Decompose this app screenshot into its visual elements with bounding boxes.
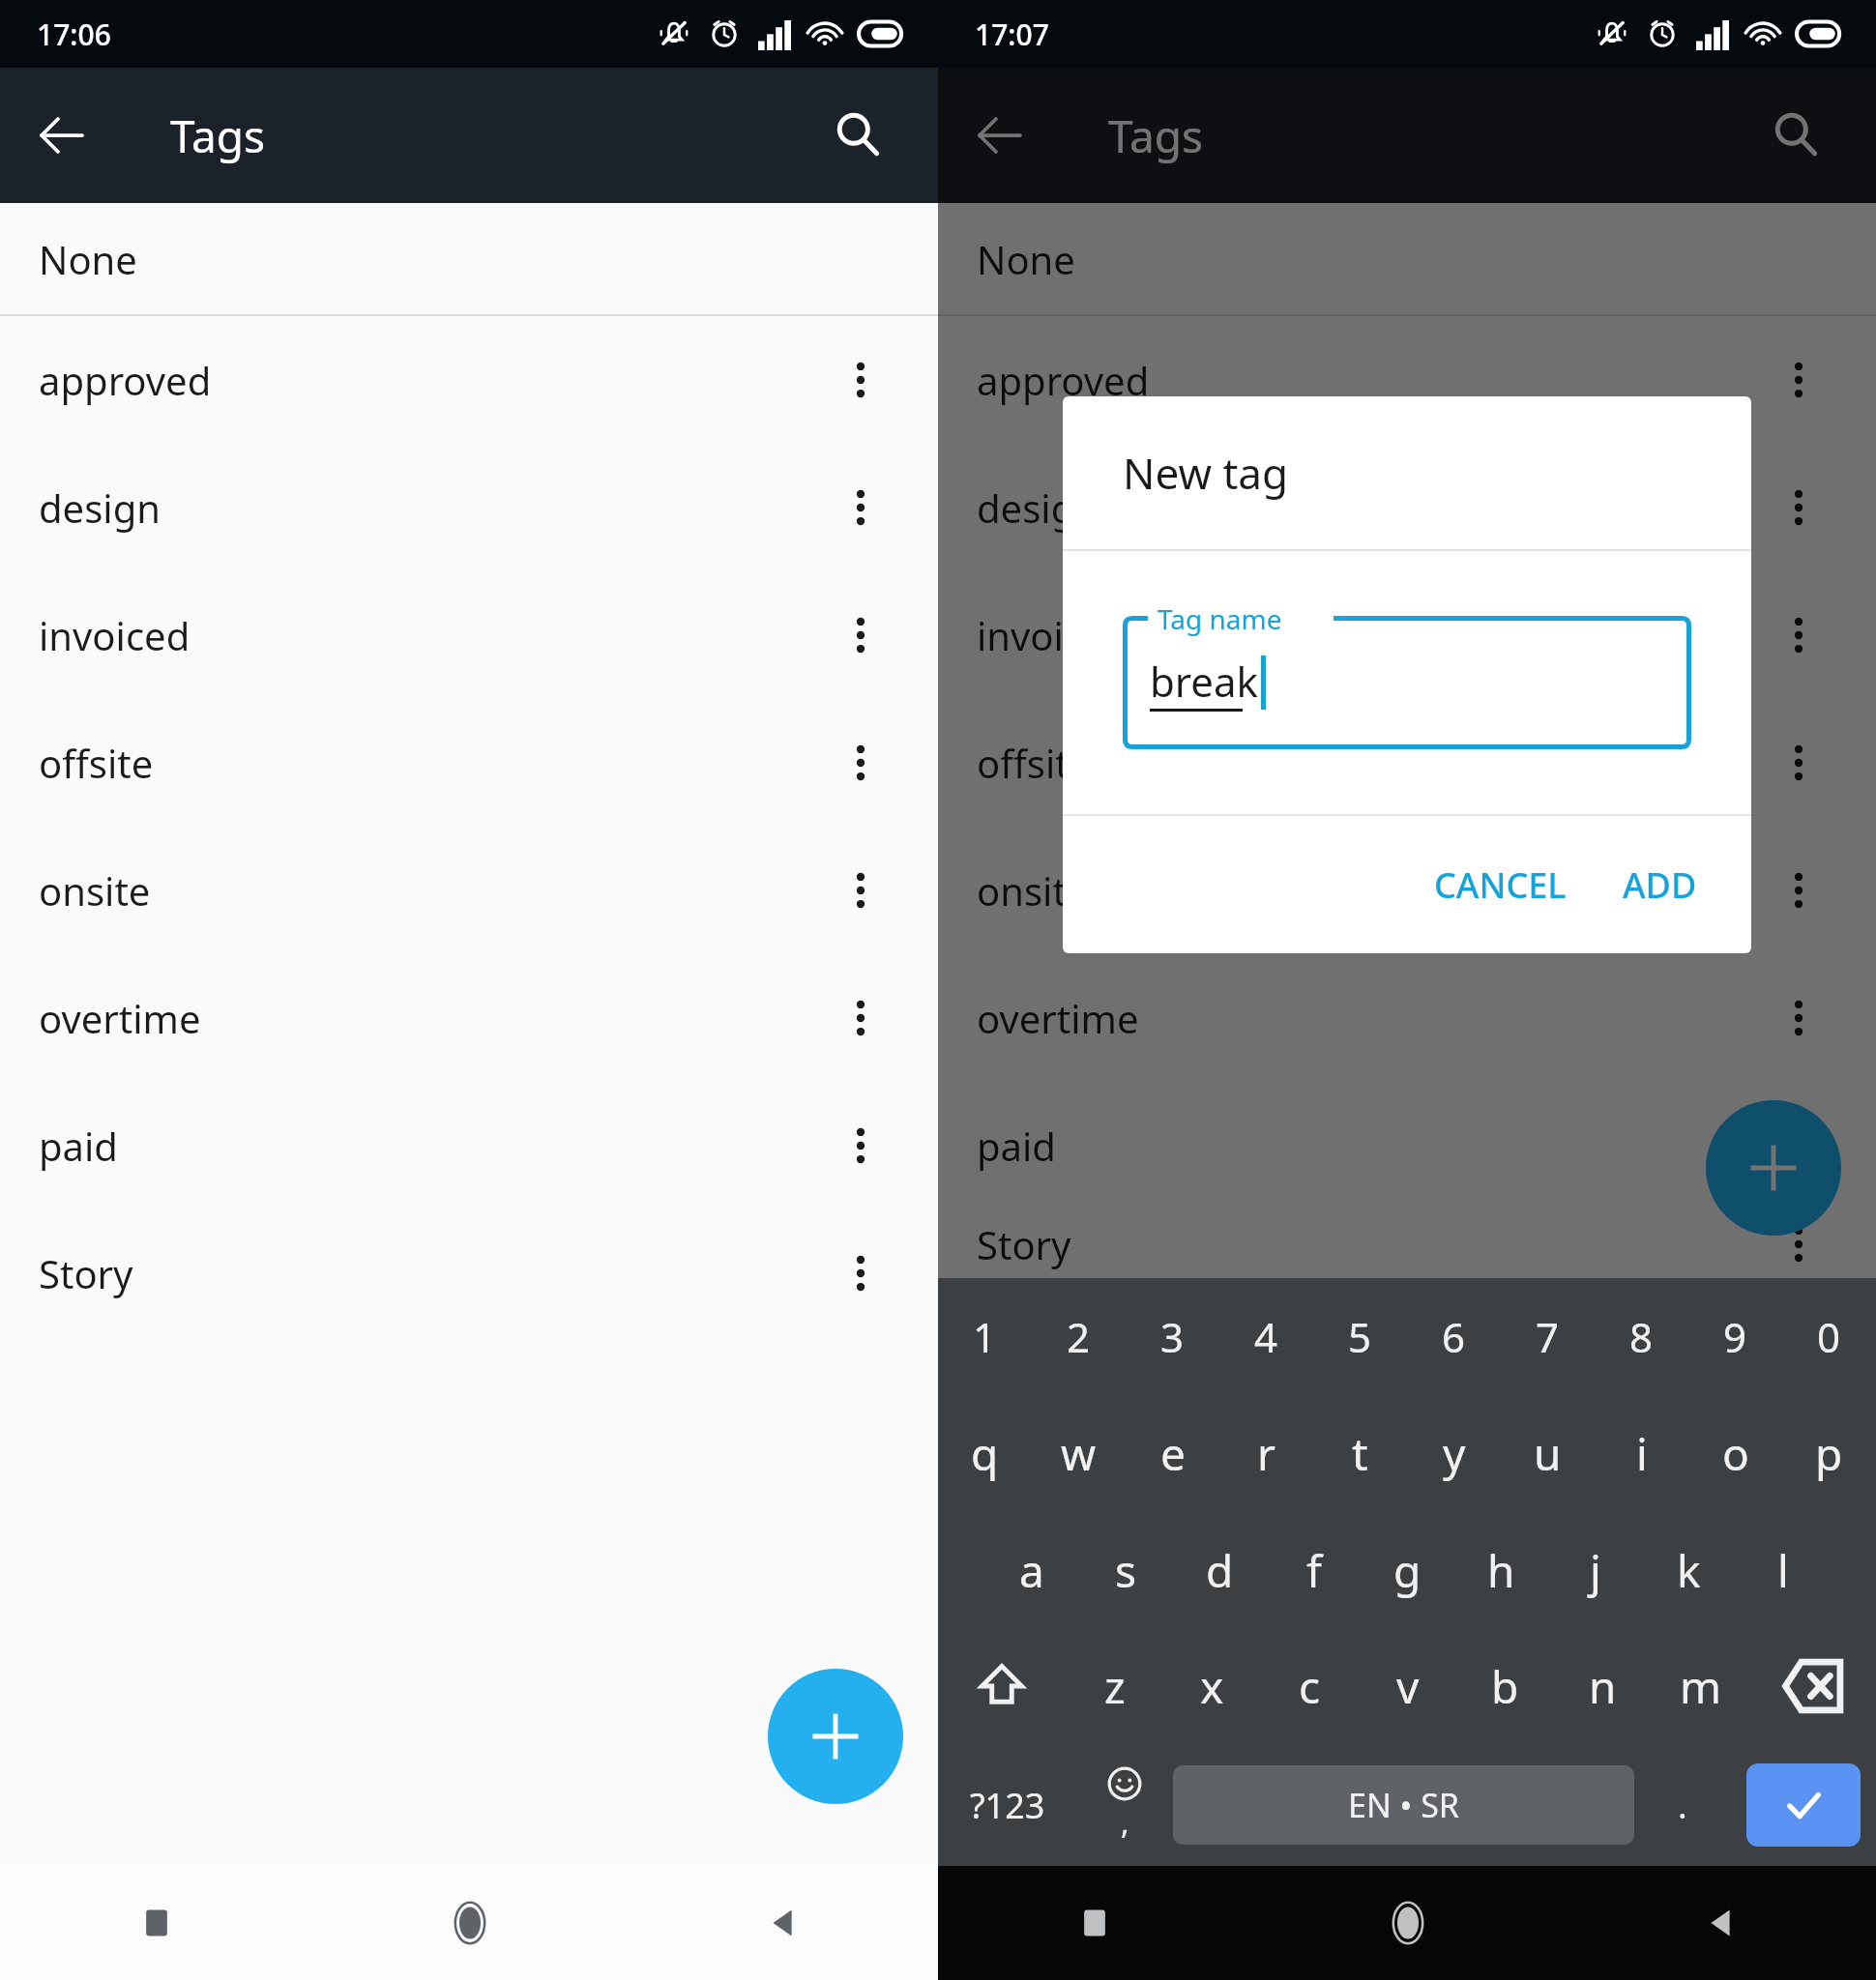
button[interactable]: invoiced xyxy=(0,571,938,699)
button[interactable]: More options for overtime xyxy=(1756,975,1841,1061)
button[interactable]: Shift xyxy=(938,1628,1066,1744)
staticText: u xyxy=(1534,1423,1562,1484)
button[interactable]: overtime xyxy=(938,954,1876,1082)
button[interactable]: More options for approved xyxy=(818,337,903,422)
button[interactable]: f xyxy=(1267,1512,1361,1628)
button[interactable]: c xyxy=(1261,1628,1359,1744)
button[interactable]: Story xyxy=(0,1209,938,1337)
button[interactable]: s xyxy=(1079,1512,1173,1628)
button[interactable]: Recents xyxy=(938,1866,1251,1980)
button[interactable]: 1 xyxy=(938,1278,1032,1395)
button[interactable]: a xyxy=(984,1512,1079,1628)
button[interactable]: . xyxy=(1634,1744,1731,1866)
button[interactable]: More options for Story xyxy=(818,1231,903,1316)
button[interactable]: paid xyxy=(0,1082,938,1209)
button[interactable]: 0 xyxy=(1782,1278,1876,1395)
staticText: ADD xyxy=(1623,861,1697,909)
button[interactable]: l xyxy=(1736,1512,1830,1628)
button[interactable]: 6 xyxy=(1407,1278,1501,1395)
button[interactable]: More options for paid xyxy=(1756,1103,1841,1188)
button[interactable]: u xyxy=(1501,1395,1595,1512)
button[interactable]: More options for approved xyxy=(1756,337,1841,422)
button[interactable]: x xyxy=(1163,1628,1261,1744)
button[interactable]: z xyxy=(1066,1628,1163,1744)
button[interactable]: More options for onsite xyxy=(1756,848,1841,933)
button[interactable]: 9 xyxy=(1688,1278,1782,1395)
button[interactable]: More options for design xyxy=(1756,465,1841,550)
button[interactable]: e xyxy=(1126,1395,1219,1512)
staticText: invoiced xyxy=(39,609,191,661)
button[interactable]: approved xyxy=(938,316,1876,444)
button[interactable]: More options for invoiced xyxy=(818,593,903,678)
button[interactable]: r xyxy=(1219,1395,1313,1512)
button[interactable]: onsite xyxy=(938,827,1876,954)
button[interactable]: j xyxy=(1548,1512,1642,1628)
button[interactable]: onsite xyxy=(0,827,938,954)
button[interactable]: Tag name xyxy=(1123,616,1691,749)
button[interactable]: design xyxy=(938,444,1876,571)
button[interactable]: Back xyxy=(955,91,1044,180)
button[interactable]: Add tag xyxy=(768,1669,903,1804)
staticText: ?123 xyxy=(970,1782,1045,1829)
button[interactable]: Back xyxy=(17,91,106,180)
button[interactable]: w xyxy=(1032,1395,1126,1512)
button[interactable]: More options for offsite xyxy=(1756,720,1841,805)
button[interactable]: k xyxy=(1642,1512,1736,1628)
button[interactable]: m xyxy=(1652,1628,1749,1744)
button[interactable]: b xyxy=(1456,1628,1554,1744)
button[interactable]: paid xyxy=(938,1082,1876,1209)
button[interactable]: More options for onsite xyxy=(818,848,903,933)
button[interactable]: d xyxy=(1173,1512,1267,1628)
button[interactable]: i xyxy=(1595,1395,1688,1512)
staticText: x xyxy=(1200,1656,1224,1717)
button[interactable]: p xyxy=(1782,1395,1876,1512)
button[interactable]: Backspace xyxy=(1749,1628,1876,1744)
button[interactable]: Search xyxy=(814,91,903,180)
button[interactable]: 5 xyxy=(1313,1278,1407,1395)
button[interactable]: q xyxy=(938,1395,1032,1512)
button[interactable]: More options for paid xyxy=(818,1103,903,1188)
button[interactable]: Enter xyxy=(1746,1763,1861,1847)
button[interactable]: 4 xyxy=(1219,1278,1313,1395)
button[interactable]: Search xyxy=(1752,91,1841,180)
button[interactable]: 7 xyxy=(1501,1278,1595,1395)
button[interactable]: offsite xyxy=(938,699,1876,827)
button[interactable]: n xyxy=(1554,1628,1652,1744)
button[interactable]: offsite xyxy=(0,699,938,827)
button[interactable]: design xyxy=(0,444,938,571)
button[interactable]: g xyxy=(1361,1512,1454,1628)
button[interactable]: More options for offsite xyxy=(818,720,903,805)
button[interactable]: Recents xyxy=(0,1866,313,1980)
button[interactable]: 3 xyxy=(1126,1278,1219,1395)
button[interactable]: Home xyxy=(1251,1866,1564,1980)
staticText: f xyxy=(1306,1540,1322,1601)
staticText: k xyxy=(1677,1540,1701,1601)
button[interactable]: 8 xyxy=(1595,1278,1688,1395)
button[interactable]: v xyxy=(1359,1628,1456,1744)
button[interactable]: invoiced xyxy=(938,571,1876,699)
button[interactable]: ADD xyxy=(1601,844,1718,926)
button[interactable]: o xyxy=(1688,1395,1782,1512)
button[interactable]: h xyxy=(1454,1512,1548,1628)
button[interactable]: approved xyxy=(0,316,938,444)
button[interactable]: EN • SR xyxy=(1173,1765,1634,1845)
button[interactable]: Home xyxy=(313,1866,626,1980)
button[interactable]: Add tag xyxy=(1706,1100,1841,1236)
button[interactable]: overtime xyxy=(0,954,938,1082)
button[interactable]: More options for invoiced xyxy=(1756,593,1841,678)
button[interactable]: y xyxy=(1407,1395,1501,1512)
button[interactable]: None xyxy=(938,203,1876,314)
button[interactable]: Story xyxy=(938,1209,1876,1278)
button[interactable]: More options for overtime xyxy=(818,975,903,1061)
button[interactable]: Emoji xyxy=(1076,1744,1173,1866)
button[interactable]: Back xyxy=(1564,1866,1876,1980)
staticText: b xyxy=(1491,1656,1519,1717)
button[interactable]: Back xyxy=(626,1866,938,1980)
button[interactable]: CANCEL xyxy=(1413,844,1588,926)
button[interactable]: More options for design xyxy=(818,465,903,550)
button[interactable]: None xyxy=(0,203,938,314)
button[interactable]: ?123 xyxy=(938,1744,1076,1866)
button[interactable]: More options for Story xyxy=(1756,1209,1841,1278)
button[interactable]: t xyxy=(1313,1395,1407,1512)
button[interactable]: 2 xyxy=(1032,1278,1126,1395)
